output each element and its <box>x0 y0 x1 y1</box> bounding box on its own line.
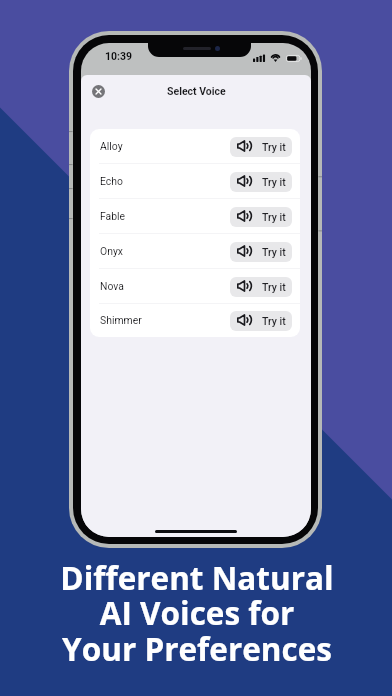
button[interactable]: Close <box>87 80 109 102</box>
button[interactable]: Onyx <box>90 234 300 269</box>
staticText: Different Natural AI Voices for Your Pre… <box>1 556 392 670</box>
staticText: Nova <box>100 280 124 292</box>
staticText: Try it <box>262 141 286 153</box>
button[interactable]: Try it <box>230 137 292 157</box>
button[interactable]: Try it <box>230 172 292 192</box>
button[interactable]: Try it <box>230 311 292 331</box>
staticText: Try it <box>262 246 286 258</box>
staticText: Select Voice <box>167 85 226 97</box>
staticText: Try it <box>262 315 286 327</box>
button[interactable]: Try it <box>230 207 292 227</box>
staticText: Alloy <box>100 140 123 152</box>
staticText: 10:39 <box>105 50 133 62</box>
button[interactable]: Shimmer <box>90 304 300 337</box>
button[interactable]: Alloy <box>90 129 300 164</box>
staticText: Try it <box>262 211 286 223</box>
staticText: Onyx <box>100 245 123 257</box>
staticText: Fable <box>100 210 126 222</box>
button[interactable]: Try it <box>230 242 292 262</box>
button[interactable]: Fable <box>90 199 300 234</box>
staticText: Try it <box>262 176 286 188</box>
button[interactable]: Try it <box>230 277 292 297</box>
button[interactable]: Nova <box>90 269 300 304</box>
staticText: Echo <box>100 175 123 187</box>
button[interactable]: Echo <box>90 164 300 199</box>
staticText: Shimmer <box>100 314 142 326</box>
staticText: Try it <box>262 281 286 293</box>
